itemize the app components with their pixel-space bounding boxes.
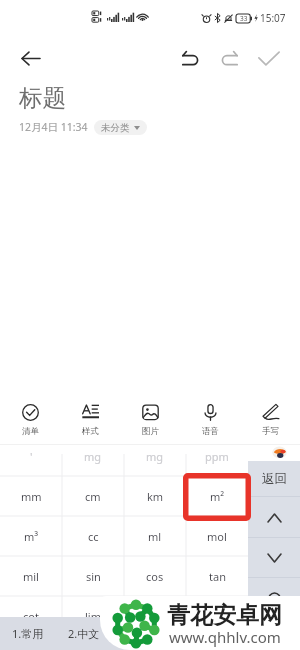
button[interactable]: Move down	[248, 538, 300, 578]
staticText: 标题	[19, 83, 66, 113]
staticText: mg	[146, 449, 164, 464]
staticText: mm	[21, 489, 42, 504]
staticText: lim	[85, 609, 101, 624]
staticText: cm	[85, 489, 101, 504]
button[interactable]: 2.中文	[56, 617, 112, 650]
staticText: cc	[88, 529, 99, 544]
staticText: 清单	[22, 426, 39, 437]
button[interactable]: 返回	[248, 461, 300, 497]
button[interactable]: Redo	[214, 41, 246, 73]
staticText: '	[30, 449, 33, 464]
staticText: ln	[212, 609, 222, 624]
staticText: mil	[23, 569, 39, 584]
staticText: 青花安卓网	[167, 601, 282, 630]
staticText: 15:07	[260, 11, 286, 25]
staticText: 返回	[262, 471, 287, 487]
button[interactable]: cos	[124, 556, 186, 596]
staticText: 图片	[142, 426, 159, 437]
staticText: m²	[210, 489, 225, 504]
button[interactable]: 手写	[240, 396, 300, 438]
button[interactable]: 未分类	[94, 120, 147, 135]
button[interactable]: ln	[186, 596, 248, 636]
staticText: log	[147, 609, 164, 624]
staticText: sin	[86, 569, 101, 584]
button[interactable]: cot	[0, 596, 62, 636]
staticText: m³	[24, 529, 39, 544]
button[interactable]: log	[124, 596, 186, 636]
button[interactable]: mg	[62, 436, 124, 476]
staticText: 手写	[262, 426, 279, 437]
button[interactable]: m²	[186, 476, 248, 516]
staticText: 1.常用	[12, 626, 44, 641]
button[interactable]: ppm	[186, 436, 248, 476]
button[interactable]: cc	[62, 516, 124, 556]
staticText: ppm	[205, 449, 229, 464]
staticText: cot	[23, 609, 39, 624]
staticText: 样式	[82, 426, 99, 437]
button[interactable]: Back	[14, 42, 46, 74]
staticText: ml	[148, 529, 162, 544]
button[interactable]: mm	[0, 476, 62, 516]
button[interactable]: Undo	[174, 41, 206, 73]
staticText: cos	[146, 569, 164, 584]
staticText: mg	[84, 449, 102, 464]
staticText: mol	[207, 529, 227, 544]
button[interactable]: 样式	[60, 396, 120, 438]
staticText: www.qhhlv.com	[169, 627, 281, 647]
button[interactable]: 语音	[180, 396, 240, 438]
staticText: 语音	[202, 426, 219, 437]
button[interactable]: Move up	[248, 497, 300, 538]
button[interactable]: mil	[0, 556, 62, 596]
staticText: 12月4日 11:34	[19, 120, 88, 134]
staticText: 33	[240, 14, 248, 23]
button[interactable]: lim	[62, 596, 124, 636]
button[interactable]: '	[0, 436, 62, 476]
staticText: 2.中文	[68, 626, 100, 641]
button[interactable]: m³	[0, 516, 62, 556]
button[interactable]: 图片	[120, 396, 180, 438]
button[interactable]: ml	[124, 516, 186, 556]
button[interactable]: mg	[124, 436, 186, 476]
button[interactable]: tan	[186, 556, 248, 596]
button[interactable]: sin	[62, 556, 124, 596]
staticText: tan	[209, 569, 226, 584]
button[interactable]: 1.常用	[0, 617, 56, 650]
button[interactable]	[248, 578, 300, 618]
staticText: 未分类	[101, 122, 130, 134]
button[interactable]: mol	[186, 516, 248, 556]
button[interactable]: cm	[62, 476, 124, 516]
staticText: km	[147, 489, 164, 504]
button[interactable]: km	[124, 476, 186, 516]
button[interactable]: Done	[253, 42, 285, 74]
button[interactable]: 清单	[0, 396, 60, 438]
